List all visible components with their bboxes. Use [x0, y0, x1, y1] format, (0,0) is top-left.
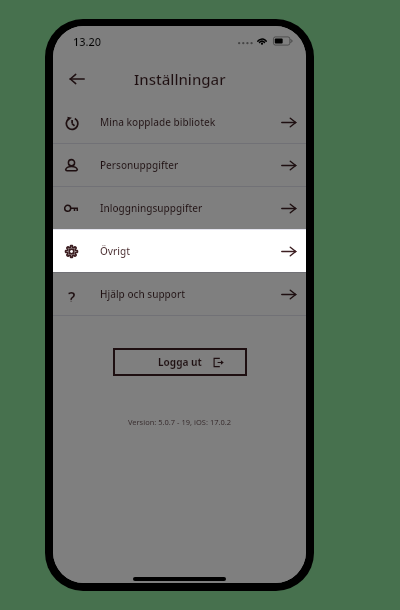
button[interactable]: Mina kopplade bibliotek — [53, 101, 306, 143]
staticText: Inställningar — [134, 69, 226, 89]
button[interactable]: Övrigt — [53, 230, 306, 272]
staticText: Hjälp och support — [100, 287, 185, 301]
button[interactable]: Personuppgifter — [53, 144, 306, 186]
button[interactable]: Tillbaka — [59, 61, 95, 97]
staticText: Logga ut — [158, 355, 202, 369]
staticText: ? — [68, 287, 76, 302]
staticText: Version: 5.0.7 - 19, iOS: 17.0.2 — [53, 417, 306, 427]
button[interactable]: Inloggningsuppgifter — [53, 187, 306, 229]
staticText: 13.20 — [73, 34, 102, 49]
button[interactable]: ? — [53, 273, 306, 315]
button[interactable]: Logga ut — [113, 348, 247, 376]
staticText: Mina kopplade bibliotek — [100, 115, 216, 129]
staticText: Personuppgifter — [100, 158, 179, 172]
staticText: Övrigt — [100, 244, 131, 258]
staticText: Inloggningsuppgifter — [100, 201, 203, 215]
